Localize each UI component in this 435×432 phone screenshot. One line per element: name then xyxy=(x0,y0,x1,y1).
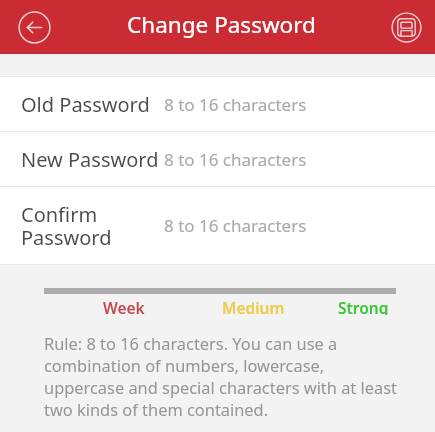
staticText: Strong xyxy=(338,297,389,315)
button[interactable]: Confirm Password xyxy=(0,187,435,264)
staticText: Medium xyxy=(222,297,285,315)
button[interactable]: Save xyxy=(386,7,426,47)
staticText: 8 to 16 characters xyxy=(164,148,307,171)
staticText: New Password xyxy=(21,146,159,173)
button[interactable]: Back xyxy=(14,7,54,47)
button[interactable]: Medium xyxy=(222,297,285,315)
button[interactable]: New Password xyxy=(0,132,435,186)
button[interactable]: Old Password xyxy=(0,77,435,131)
staticText: Old Password xyxy=(21,91,150,118)
staticText: 8 to 16 characters xyxy=(164,93,307,116)
staticText: Rule: 8 to 16 characters. You can use a … xyxy=(44,332,404,420)
staticText: Change Password xyxy=(127,9,316,40)
staticText: Confirm Password xyxy=(21,201,112,251)
button[interactable]: Strong xyxy=(338,297,389,315)
staticText: Week xyxy=(103,297,145,315)
button[interactable]: Week xyxy=(103,297,145,315)
staticText: 8 to 16 characters xyxy=(164,214,307,237)
